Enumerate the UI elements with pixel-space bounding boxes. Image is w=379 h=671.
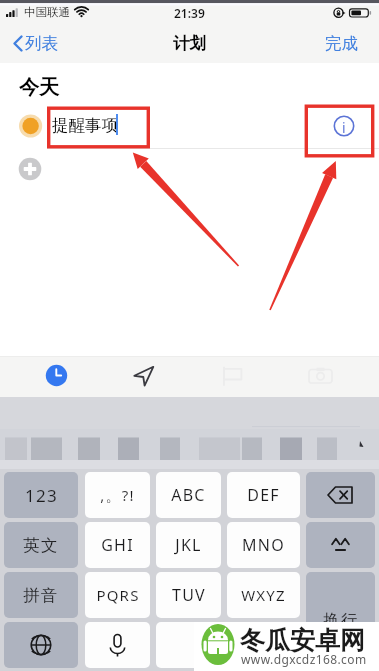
button[interactable]: ,。?! bbox=[85, 472, 150, 518]
button[interactable]: ABC bbox=[156, 472, 221, 518]
button[interactable]: Emoticons bbox=[306, 522, 375, 568]
staticText: GHI bbox=[101, 534, 134, 556]
staticText: ABC bbox=[171, 484, 206, 506]
button[interactable]: Location bbox=[129, 360, 160, 391]
staticText: 21:39 bbox=[174, 5, 205, 21]
button[interactable]: 提醒事项 bbox=[0, 103, 379, 148]
staticText: 拼音 bbox=[23, 585, 59, 606]
staticText: MNO bbox=[242, 534, 285, 556]
button[interactable]: PQRS bbox=[85, 572, 150, 618]
button[interactable]: DEF bbox=[227, 472, 300, 518]
staticText: 123 bbox=[25, 484, 58, 507]
button[interactable]: Today bbox=[41, 360, 72, 391]
button[interactable]: 列表 bbox=[10, 30, 58, 57]
staticText: 计划 bbox=[173, 33, 206, 54]
button[interactable]: WXYZ bbox=[227, 572, 300, 618]
staticText: i bbox=[342, 118, 346, 137]
button[interactable]: 拼音 bbox=[4, 572, 78, 618]
button[interactable]: MNO bbox=[227, 522, 300, 568]
staticText: 英文 bbox=[23, 535, 59, 556]
button[interactable]: TUV bbox=[156, 572, 221, 618]
button[interactable]: Switch keyboard bbox=[4, 622, 78, 668]
button[interactable]: Backspace bbox=[306, 472, 375, 518]
staticText: www.dgxcdz168.com bbox=[241, 651, 367, 667]
button[interactable]: 123 bbox=[4, 472, 78, 518]
staticText: TUV bbox=[172, 584, 206, 606]
staticText: WXYZ bbox=[241, 585, 286, 605]
button[interactable]: 完成 bbox=[325, 33, 358, 54]
staticText: 列表 bbox=[25, 33, 58, 54]
staticText: 完成 bbox=[325, 33, 358, 54]
button[interactable]: Details bbox=[330, 112, 358, 140]
button[interactable]: Add reminder bbox=[0, 148, 379, 186]
staticText: 中国联通 bbox=[24, 5, 70, 19]
staticText: DEF bbox=[247, 484, 280, 506]
button[interactable]: JKL bbox=[156, 522, 221, 568]
staticText: 今天 bbox=[19, 75, 59, 100]
staticText: ,。?! bbox=[100, 485, 135, 505]
staticText: PQRS bbox=[96, 585, 140, 605]
button[interactable]: 换行 bbox=[306, 572, 375, 668]
staticText: 换行 bbox=[323, 610, 359, 631]
button[interactable] bbox=[156, 622, 300, 668]
button[interactable]: 英文 bbox=[4, 522, 78, 568]
button[interactable]: Camera bbox=[305, 360, 336, 391]
button[interactable]: GHI bbox=[85, 522, 150, 568]
staticText: 冬瓜安卓网 bbox=[240, 625, 365, 656]
button[interactable]: Dictation bbox=[85, 622, 150, 668]
staticText: 提醒事项 bbox=[52, 115, 118, 136]
staticText: JKL bbox=[175, 534, 202, 556]
